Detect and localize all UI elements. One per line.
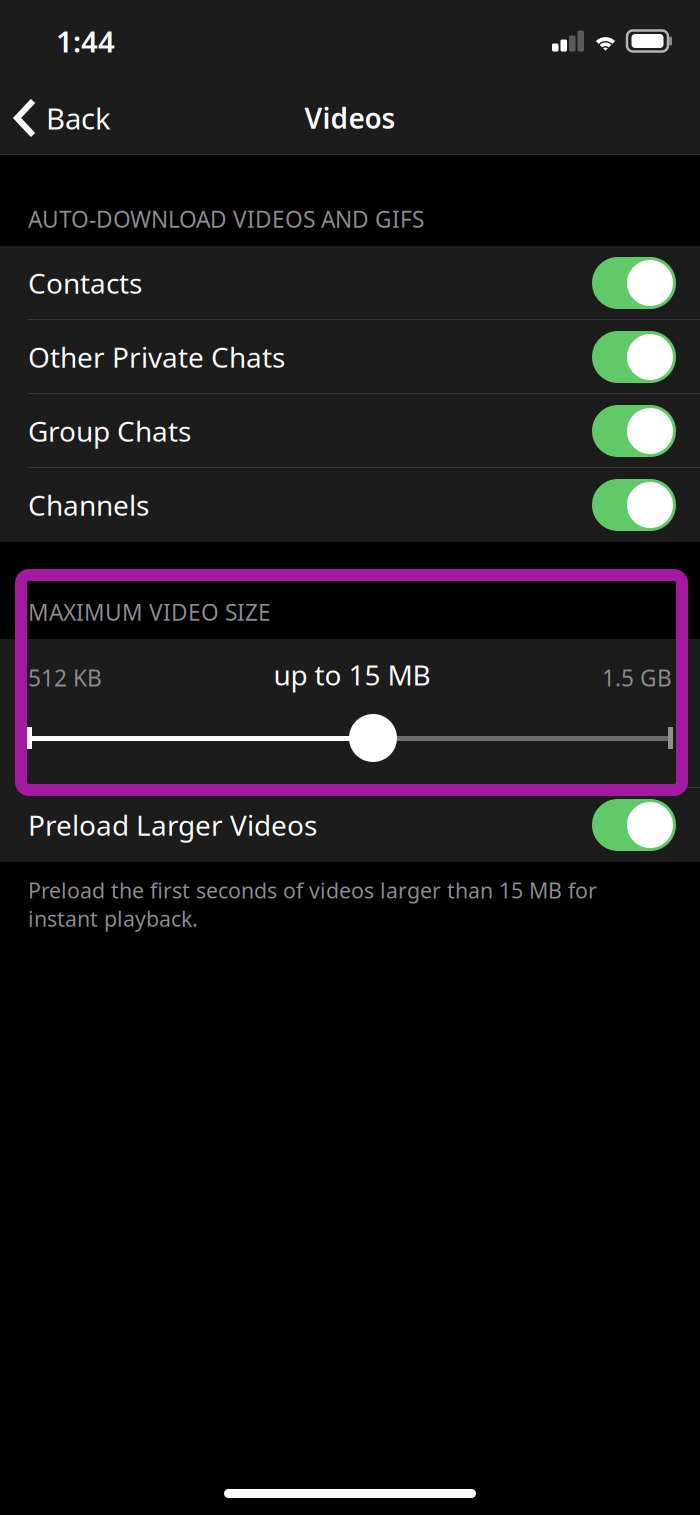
staticText: Back	[46, 98, 111, 137]
staticText: Videos	[304, 99, 395, 137]
button[interactable]: Preload Larger Videos	[0, 788, 700, 862]
staticText: Channels	[28, 486, 149, 524]
staticText: 1.5 GB	[602, 662, 672, 693]
staticText: 512 KB	[28, 662, 102, 693]
staticText: MAXIMUM VIDEO SIZE	[28, 597, 271, 627]
button[interactable]: Contacts	[0, 246, 700, 320]
staticText: 1:44	[56, 21, 115, 60]
staticText: up to 15 MB	[273, 656, 430, 693]
staticText: AUTO-DOWNLOAD VIDEOS AND GIFS	[28, 204, 424, 234]
staticText: Group Chats	[28, 412, 191, 450]
staticText: Preload Larger Videos	[28, 806, 317, 844]
staticText: Contacts	[28, 264, 142, 302]
staticText: Preload the first seconds of videos larg…	[28, 876, 597, 933]
button[interactable]: Other Private Chats	[0, 320, 700, 394]
staticText: Other Private Chats	[28, 338, 285, 376]
button[interactable]: Channels	[0, 468, 700, 542]
button[interactable]: Group Chats	[0, 394, 700, 468]
button[interactable]: Back	[0, 85, 111, 151]
